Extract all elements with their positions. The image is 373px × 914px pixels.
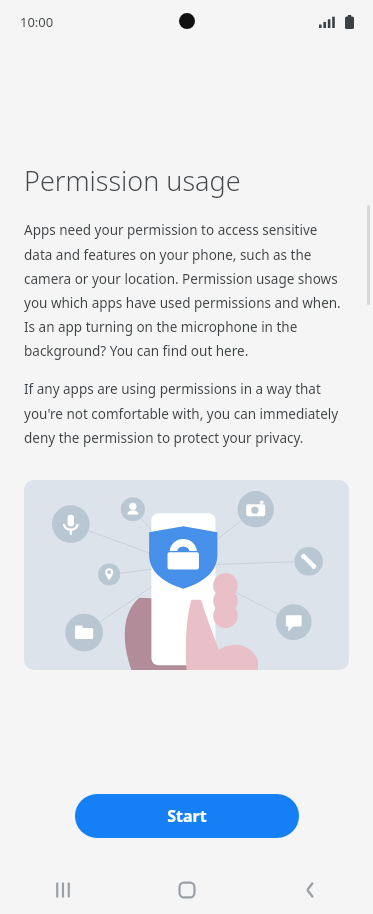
staticText: Permission usage <box>24 162 241 199</box>
button[interactable]: Recents <box>0 866 125 914</box>
staticText: Apps need your permission to access sens… <box>24 221 349 360</box>
button[interactable]: Start <box>75 794 299 838</box>
staticText: If any apps are using permissions in a w… <box>24 380 349 447</box>
staticText: 10:00 <box>20 13 54 31</box>
button[interactable]: Back <box>249 866 373 914</box>
button[interactable]: Home <box>125 866 249 914</box>
staticText: Start <box>167 805 207 827</box>
